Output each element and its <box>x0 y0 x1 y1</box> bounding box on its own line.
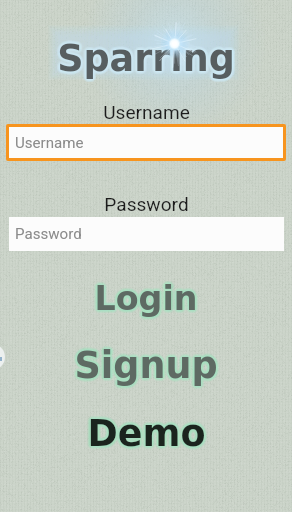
staticText: Login <box>93 278 197 317</box>
staticText: Demo <box>86 413 205 455</box>
staticText: Sparring <box>58 37 236 79</box>
staticText: Sparring <box>57 34 235 76</box>
staticText: Signup <box>77 343 221 385</box>
staticText: Login <box>92 278 196 317</box>
staticText: Signup <box>74 343 218 385</box>
staticText: Sparring <box>56 40 234 82</box>
staticText: Demo <box>85 410 204 452</box>
staticText: Signup <box>73 342 217 384</box>
staticText: Sparring <box>58 40 236 82</box>
staticText: Sparring <box>57 37 235 79</box>
staticText: Login <box>95 281 199 320</box>
staticText: Login <box>94 281 198 320</box>
staticText: Sparring <box>60 38 238 80</box>
staticText: Signup <box>72 343 216 385</box>
button[interactable]: Open menu <box>0 344 5 370</box>
staticText: Login <box>95 279 199 318</box>
staticText: Sparring <box>56 38 234 80</box>
button[interactable]: Username <box>9 127 283 158</box>
staticText: Sparring <box>57 35 235 77</box>
staticText: Sparring <box>54 36 232 78</box>
staticText: Sparring <box>58 36 236 78</box>
staticText: Login <box>96 278 200 317</box>
staticText: Demo <box>88 411 207 453</box>
staticText: Signup <box>75 344 219 386</box>
staticText: Signup <box>71 345 215 387</box>
staticText: Login <box>97 280 201 319</box>
staticText: Sparring <box>58 35 236 77</box>
staticText: Demo <box>88 412 207 454</box>
staticText: Login <box>94 278 198 317</box>
staticText: Signup <box>73 341 217 383</box>
staticText: Signup <box>75 342 219 384</box>
staticText: Sparring <box>56 37 234 79</box>
staticText: Demo <box>86 411 205 453</box>
staticText: Login <box>92 277 196 316</box>
staticText: Demo <box>88 413 207 455</box>
staticText: Demo <box>88 412 207 454</box>
staticText: Demo <box>89 413 208 455</box>
staticText: Demo <box>87 410 206 452</box>
staticText: Demo <box>86 412 205 454</box>
staticText: Login <box>93 281 197 320</box>
staticText: Login <box>92 280 196 319</box>
staticText: Sparring <box>55 37 233 79</box>
staticText: Demo <box>85 414 204 456</box>
staticText: Demo <box>90 411 209 453</box>
staticText: Login <box>91 280 195 319</box>
staticText: Signup <box>74 342 218 384</box>
staticText: Sparring <box>56 39 234 81</box>
staticText: Login <box>94 280 198 319</box>
staticText: Sparring <box>58 39 236 81</box>
staticText: Sparring <box>56 37 234 79</box>
staticText: Demo <box>90 413 209 455</box>
staticText: Sparring <box>57 36 235 78</box>
staticText: Sparring <box>58 37 236 79</box>
staticText: Signup <box>75 343 219 385</box>
staticText: Login <box>92 281 196 320</box>
staticText: Demo <box>86 415 205 457</box>
staticText: Signup <box>75 345 219 387</box>
staticText: Sparring <box>56 36 234 78</box>
staticText: Demo <box>85 413 204 455</box>
staticText: Sparring <box>57 38 235 80</box>
staticText: Signup <box>73 345 217 387</box>
staticText: Sparring <box>58 38 236 80</box>
staticText: Sparring <box>57 38 235 80</box>
staticText: Signup <box>76 346 220 388</box>
staticText: Sparring <box>57 40 235 82</box>
staticText: Login <box>93 277 197 316</box>
staticText: Sparring <box>57 36 235 78</box>
staticText: Demo <box>86 411 205 453</box>
staticText: Signup <box>76 345 220 387</box>
staticText: Sparring <box>60 36 238 78</box>
staticText: Login <box>93 280 197 319</box>
staticText: Signup <box>75 345 219 387</box>
staticText: Signup <box>72 346 216 388</box>
staticText: Sparring <box>55 35 233 77</box>
staticText: Signup <box>76 343 220 385</box>
button[interactable]: Signup <box>0 344 292 390</box>
staticText: Demo <box>86 413 205 455</box>
staticText: Signup <box>74 347 218 389</box>
staticText: Demo <box>84 412 203 454</box>
staticText: Login <box>95 280 199 319</box>
staticText: Signup <box>74 344 218 386</box>
staticText: Username <box>15 134 84 152</box>
staticText: Signup <box>75 346 219 388</box>
staticText: Sparring <box>56 35 234 77</box>
button[interactable]: Demo <box>0 412 292 458</box>
staticText: Sparring <box>59 38 237 80</box>
staticText: Login <box>96 279 200 318</box>
button[interactable]: Password <box>9 217 284 251</box>
staticText: Sparring <box>56 38 234 80</box>
button[interactable]: Login <box>0 279 292 325</box>
staticText: Demo <box>88 414 207 456</box>
staticText: Demo <box>86 409 205 451</box>
staticText: Login <box>93 279 197 318</box>
staticText: Signup <box>76 344 220 386</box>
staticText: Signup <box>75 344 219 386</box>
staticText: Sparring <box>56 36 234 78</box>
staticText: Signup <box>71 343 215 385</box>
staticText: Signup <box>75 344 219 386</box>
